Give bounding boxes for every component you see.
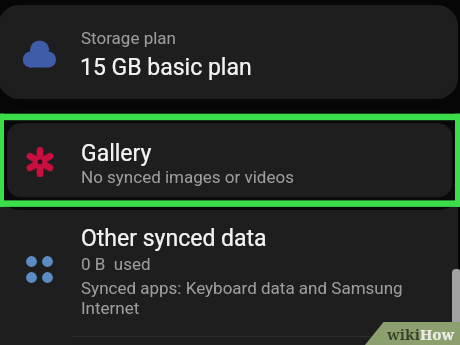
button[interactable]	[0, 5, 458, 99]
staticText: Storage plan	[81, 28, 176, 48]
staticText: 15 GB basic plan	[80, 54, 252, 81]
button[interactable]	[0, 113, 458, 207]
staticText: Synced apps: Keyboard data and Samsung I…	[81, 278, 417, 318]
staticText: Other synced data	[81, 225, 267, 252]
button[interactable]	[0, 207, 458, 336]
staticText: wiki	[387, 324, 420, 344]
staticText: No synced images or videos	[81, 167, 294, 187]
staticText: How	[420, 324, 455, 344]
staticText: 0 B used	[81, 254, 151, 274]
staticText: Gallery	[81, 140, 152, 167]
